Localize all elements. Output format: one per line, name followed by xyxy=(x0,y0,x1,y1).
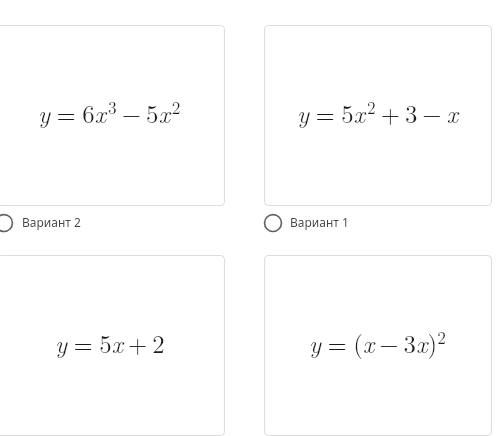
button[interactable]: y = 5x + 2 xyxy=(0,255,225,436)
button[interactable]: Вариант 1 xyxy=(262,209,349,237)
button[interactable]: y = 5x 2 + 3 − x xyxy=(264,25,492,206)
staticText: y = (x − 3x)2 xyxy=(309,324,446,361)
staticText: Вариант 2 xyxy=(22,214,81,230)
button[interactable]: y = 6x 3 − 5x 2 xyxy=(0,25,225,206)
staticText: Вариант 1 xyxy=(290,214,349,230)
button[interactable]: Вариант 2 xyxy=(0,209,81,237)
staticText: y = 5x 2 + 3 − x xyxy=(297,94,459,131)
staticText: y = 5x + 2 xyxy=(55,325,165,360)
button[interactable]: y = (x − 3x)2 xyxy=(264,255,492,436)
staticText: y = 6x 3 − 5x 2 xyxy=(38,94,181,131)
